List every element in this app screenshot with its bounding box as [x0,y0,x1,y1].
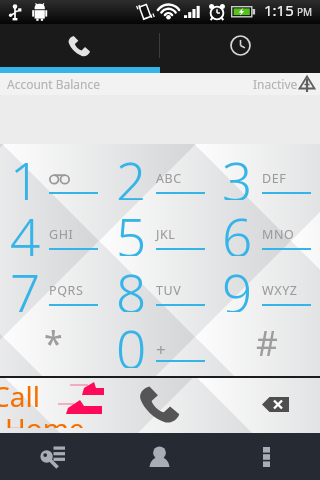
button[interactable]: * [0,312,107,368]
button[interactable]: More options [213,433,320,480]
button[interactable]: 5 [107,200,214,256]
button[interactable]: 8 [107,256,214,312]
button[interactable]: Call [110,376,210,433]
other: Call [139,385,181,424]
staticText: 3 [222,144,253,200]
staticText: * [44,320,63,366]
staticText: 4 [10,200,41,256]
button[interactable]: # [213,312,320,368]
button[interactable]: 3 [213,144,320,200]
staticText: WXYZ [262,282,298,299]
button[interactable]: Dialer [0,24,159,67]
staticText: 8 [116,256,147,312]
staticText: 1 [10,144,41,200]
staticText: 7 [10,256,41,312]
staticText: DEF [262,170,287,187]
button[interactable]: 4 [0,200,107,256]
staticText: 9 [222,256,253,312]
staticText: PM [297,5,313,19]
button[interactable]: 6 [213,200,320,256]
button[interactable]: 2 [107,144,214,200]
staticText: 1:15 [264,0,294,20]
other: More options [263,447,270,466]
staticText: 2 [116,144,147,200]
other: Backspace [262,397,289,412]
staticText: TUV [156,282,182,299]
button[interactable]: Keypad [0,433,106,480]
other: Dialer [68,35,91,57]
button[interactable]: 9 [213,256,320,312]
staticText: Home [5,409,85,428]
other: Call history [230,35,251,56]
staticText: 5 [116,200,147,256]
button[interactable]: Call history [160,24,320,67]
staticText: PQRS [49,282,84,299]
staticText: ABC [156,170,182,187]
staticText: + [156,338,167,361]
button[interactable]: Account Balance [0,73,320,95]
staticText: Call [0,377,40,415]
staticText: JKL [156,226,176,243]
button[interactable]: 0 [107,312,214,368]
button[interactable]: Contacts [106,433,213,480]
staticText: 6 [222,200,253,256]
other: Keypad [40,445,66,471]
staticText: Account Balance [7,76,101,92]
staticText: # [256,320,278,366]
button[interactable]: 1 [0,144,107,200]
button[interactable]: 7 [0,256,107,312]
staticText: 0 [116,312,147,368]
other: Contacts [149,446,170,467]
staticText: Inactive [253,76,298,92]
staticText: MNO [262,226,295,243]
button[interactable]: Backspace [230,376,320,433]
staticText: GHI [49,226,74,243]
